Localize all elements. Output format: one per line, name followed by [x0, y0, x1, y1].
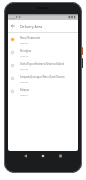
staticText: Belapur [20, 88, 30, 92]
staticText: 10:00 [9, 16, 16, 19]
button[interactable]: Nerul/Seawoods [8, 33, 78, 46]
staticText: Vashi/Koparkhairane/Ghansoli/Airoli [20, 62, 65, 66]
staticText: Nerul/Seawoods [20, 36, 41, 40]
staticText: 400705 [20, 80, 29, 83]
staticText: Sanpada/Juinagar/Nerul East/Darave [20, 75, 65, 79]
staticText: 400703 [20, 67, 29, 70]
button[interactable]: Kharghar [8, 46, 78, 59]
button[interactable]: Belapur [8, 85, 78, 98]
button[interactable] [52, 152, 69, 160]
staticText: Kharghar [20, 49, 32, 53]
button[interactable] [35, 152, 52, 160]
staticText: Delivery Area [20, 24, 43, 29]
staticText: 400706 [20, 41, 29, 44]
button[interactable]: Vashi/Koparkhairane/Ghansoli/Airoli [8, 59, 78, 72]
button[interactable] [11, 24, 15, 28]
staticText: 400614 [20, 93, 29, 96]
button[interactable]: Sanpada/Juinagar/Nerul East/Darave [8, 72, 78, 85]
button[interactable] [18, 152, 35, 160]
staticText: 410210 [20, 54, 29, 57]
